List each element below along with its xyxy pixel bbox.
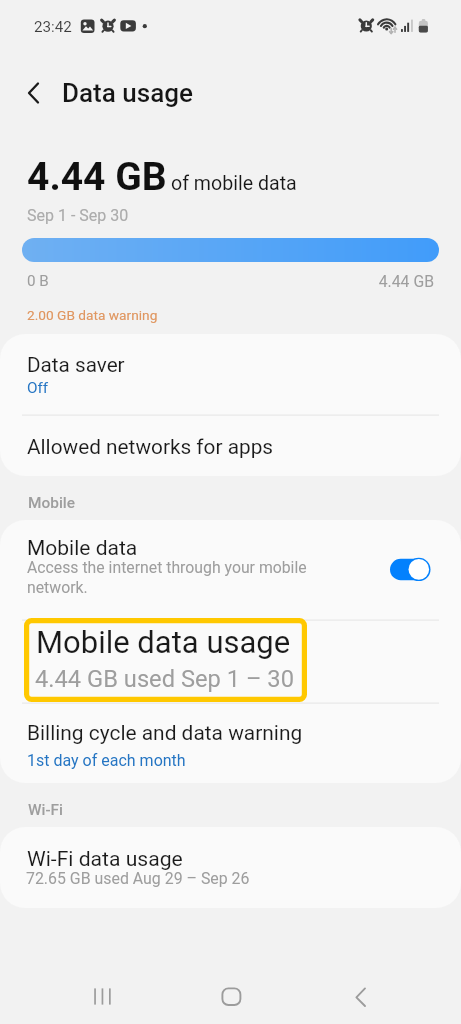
staticText: Data usage — [62, 78, 461, 108]
staticText: Wi-Fi — [28, 801, 461, 819]
button[interactable]: Recent apps — [86, 982, 118, 1014]
button[interactable]: Mobile data usage — [24, 618, 307, 702]
staticText: Mobile — [28, 494, 461, 512]
staticText: Mobile data usage — [36, 624, 461, 660]
staticText: 23:42 — [34, 18, 461, 36]
staticText: Allowed networks for apps — [27, 435, 461, 459]
staticText: 4.44 GB used Sep 1 – 30 — [35, 665, 461, 693]
staticText: Sep 1 - Sep 30 — [27, 206, 461, 225]
staticText: Billing cycle and data warning — [27, 721, 461, 745]
staticText: Data saver — [27, 353, 461, 377]
staticText: Access the internet through your mobile … — [27, 558, 327, 597]
staticText: Off — [27, 379, 461, 397]
staticText: 4.44 GB — [134, 272, 434, 291]
staticText: 4.44 GB — [27, 154, 461, 200]
button[interactable]: Billing cycle and data warning — [0, 703, 461, 783]
button[interactable]: Home — [215, 982, 247, 1014]
staticText: 0 B — [27, 272, 461, 290]
button[interactable]: Back — [345, 982, 377, 1014]
staticText: Wi-Fi data usage — [27, 846, 461, 871]
button[interactable]: Navigate up — [16, 73, 56, 113]
button[interactable]: Allowed networks for apps — [0, 415, 461, 476]
button[interactable]: Data saver — [0, 334, 461, 415]
button[interactable]: Mobile data — [0, 520, 461, 620]
button[interactable]: Mobile data on — [388, 556, 432, 584]
staticText: 1st day of each month — [27, 751, 461, 770]
button[interactable]: Data usage — [55, 72, 215, 112]
button[interactable]: Wi-Fi data usage — [0, 827, 461, 908]
staticText: Mobile data — [27, 536, 461, 561]
staticText: 72.65 GB used Aug 29 – Sep 26 — [26, 869, 461, 888]
staticText: of mobile data — [171, 172, 461, 195]
staticText: 2.00 GB data warning — [27, 307, 461, 323]
